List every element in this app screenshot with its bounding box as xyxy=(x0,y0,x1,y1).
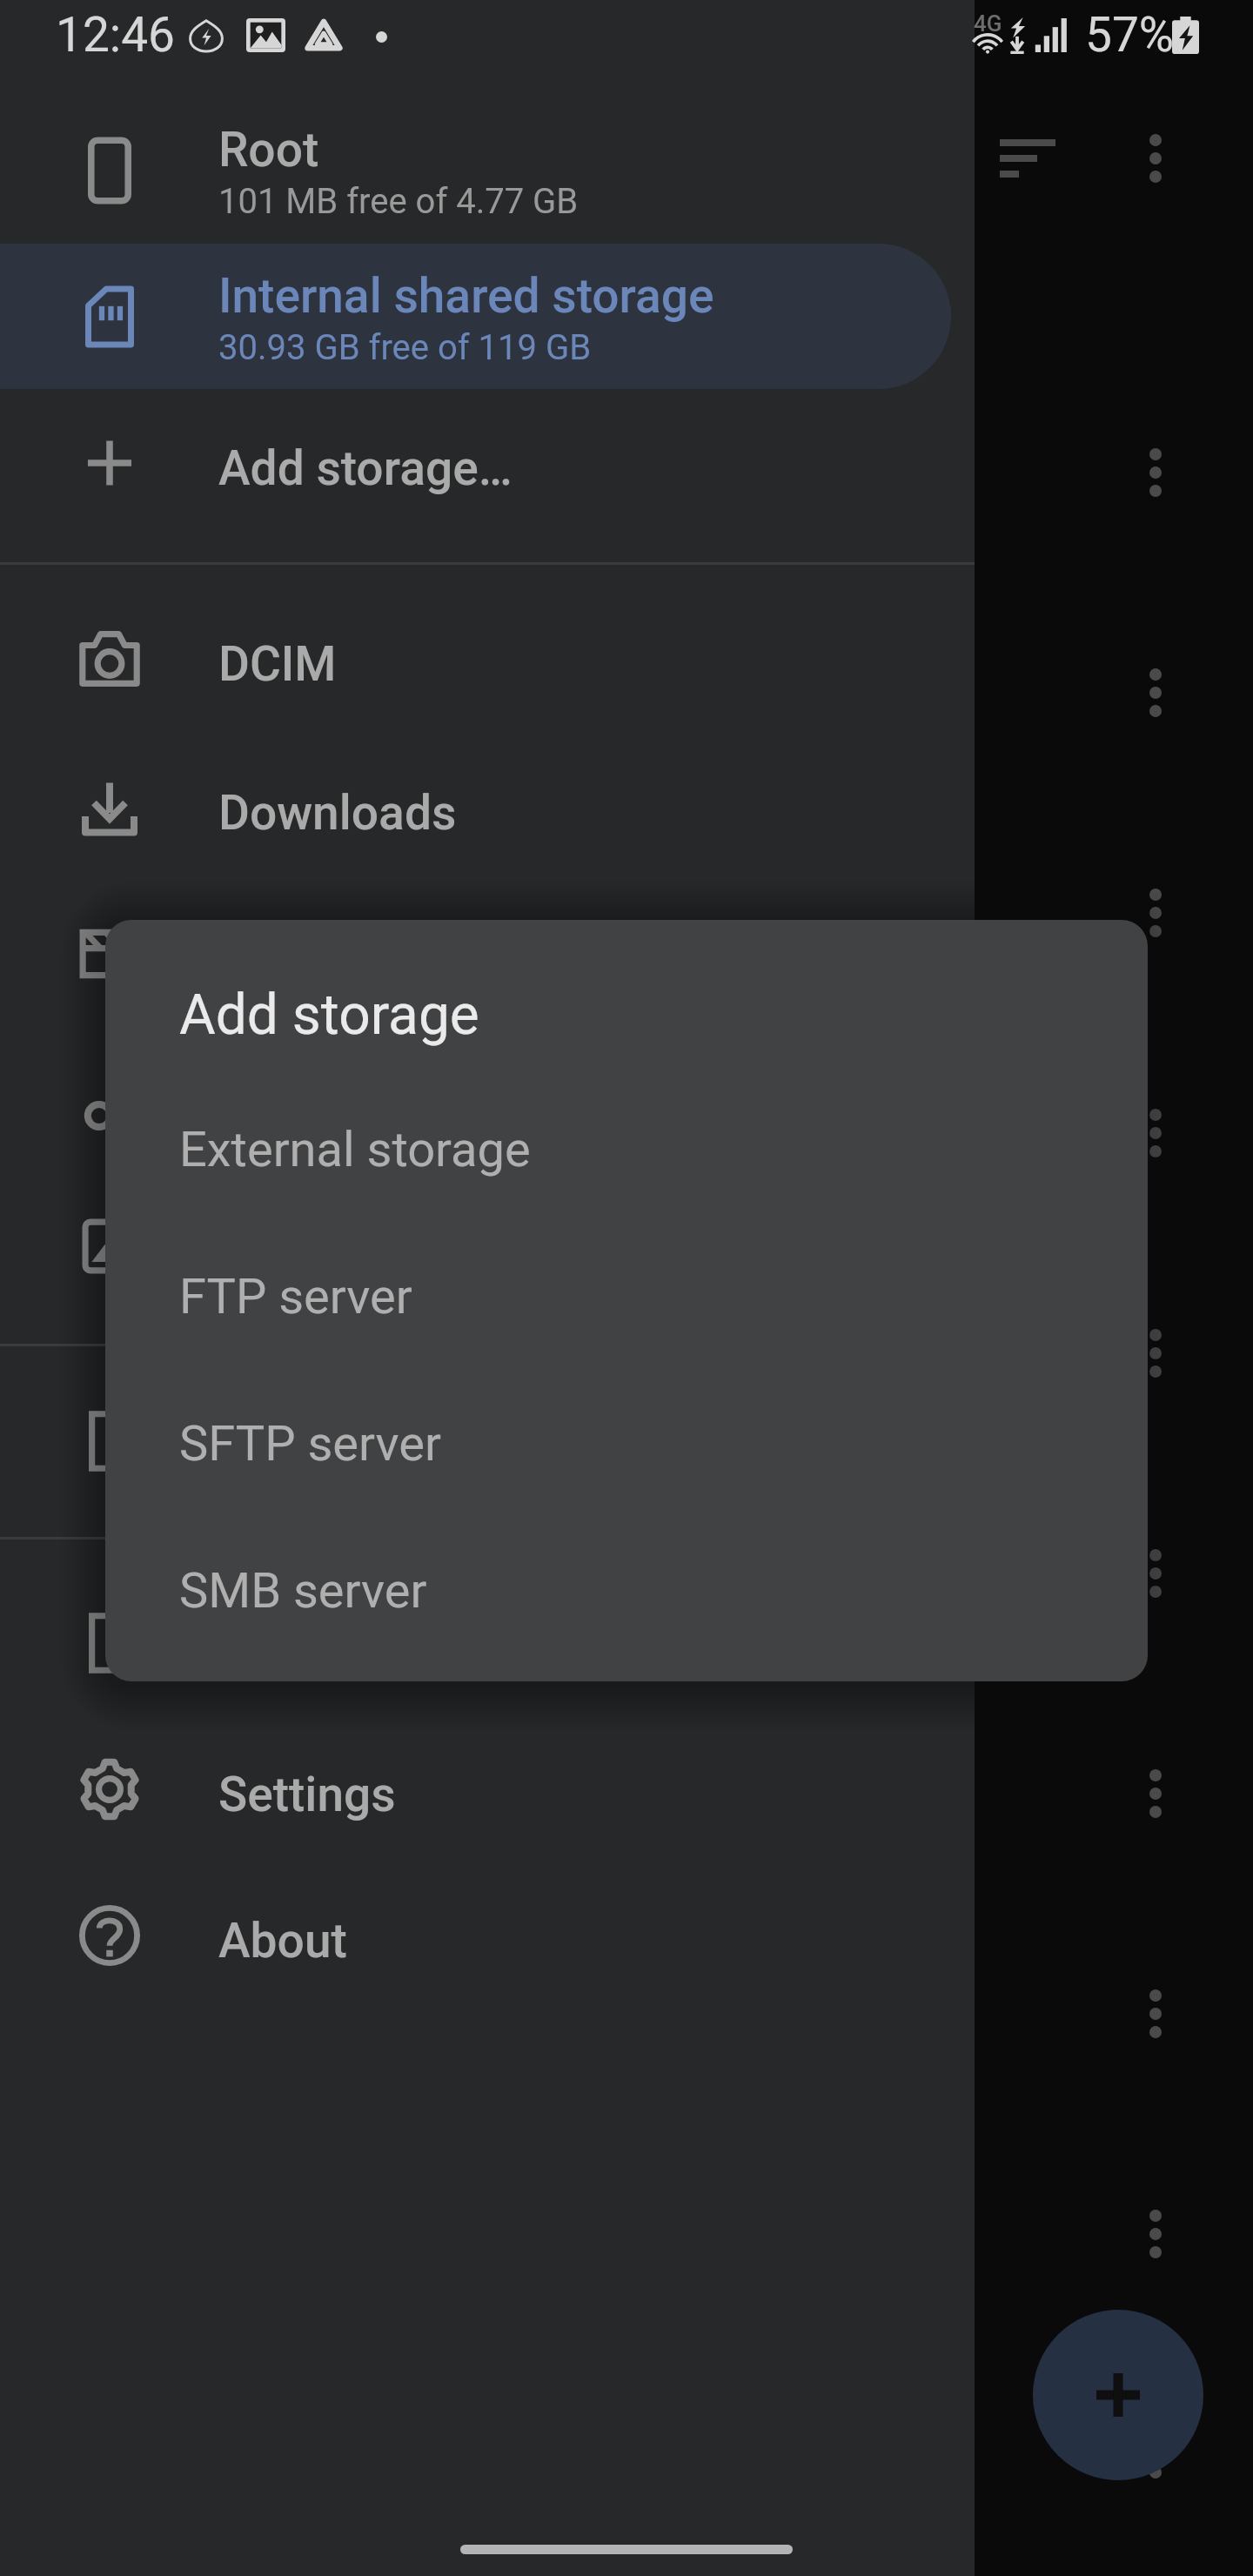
button[interactable]: DCIM xyxy=(0,586,951,731)
staticText: 12:46 xyxy=(56,7,175,63)
staticText: Internal shared storage xyxy=(218,268,714,324)
staticText: SFTP server xyxy=(179,1415,441,1472)
staticText: Settings xyxy=(218,1767,396,1822)
button[interactable]: Add storage… xyxy=(0,390,951,535)
button[interactable]: More options xyxy=(1117,120,1194,197)
staticText: 57% xyxy=(1085,7,1175,63)
button[interactable]: About xyxy=(0,1862,951,2008)
button[interactable]: More options xyxy=(1117,875,1194,951)
button[interactable]: Music xyxy=(0,1027,951,1172)
staticText: External storage xyxy=(179,1121,531,1178)
button[interactable]: More options xyxy=(1117,1315,1194,1392)
staticText: 30.93 GB free of 119 GB xyxy=(218,327,592,368)
button[interactable]: External storage xyxy=(105,1073,1148,1220)
staticText: Documents xyxy=(218,1419,464,1474)
button[interactable]: Pictures xyxy=(0,1173,951,1318)
button[interactable]: Internal shared storage xyxy=(0,244,951,389)
staticText: Music xyxy=(218,1077,350,1133)
button[interactable]: More options xyxy=(1117,1095,1194,1171)
staticText: About xyxy=(218,1913,347,1969)
button[interactable]: Files xyxy=(0,1570,951,1715)
button[interactable]: Downloads xyxy=(0,735,951,880)
staticText: DCIM xyxy=(218,636,337,692)
staticText: SMB server xyxy=(179,1562,427,1620)
button[interactable]: More options xyxy=(1117,1535,1194,1612)
button[interactable]: More options xyxy=(1117,1976,1194,2052)
staticText: Add storage… xyxy=(218,440,513,496)
button[interactable]: Settings xyxy=(0,1716,951,1862)
staticText: 101 MB free of 4.77 GB xyxy=(218,181,579,222)
staticText: Root xyxy=(218,122,319,178)
button[interactable]: Movies xyxy=(0,881,951,1026)
staticText: FTP server xyxy=(179,1268,412,1325)
button[interactable]: More options xyxy=(1117,2416,1194,2492)
staticText: 4G xyxy=(974,10,1002,37)
button[interactable]: More options xyxy=(1117,1755,1194,1832)
staticText: Downloads xyxy=(218,785,457,841)
button[interactable]: SFTP server xyxy=(105,1367,1148,1514)
staticText: Add storage xyxy=(179,983,479,1048)
button[interactable]: More options xyxy=(1117,434,1194,511)
button[interactable]: Documents xyxy=(0,1368,951,1513)
button[interactable]: FTP server xyxy=(105,1220,1148,1367)
button[interactable]: Root xyxy=(0,97,951,243)
button[interactable]: Create new xyxy=(1033,2310,1203,2480)
button[interactable]: More options xyxy=(1117,654,1194,731)
button[interactable]: More options xyxy=(1117,2196,1194,2272)
button[interactable]: SMB server xyxy=(105,1514,1148,1661)
